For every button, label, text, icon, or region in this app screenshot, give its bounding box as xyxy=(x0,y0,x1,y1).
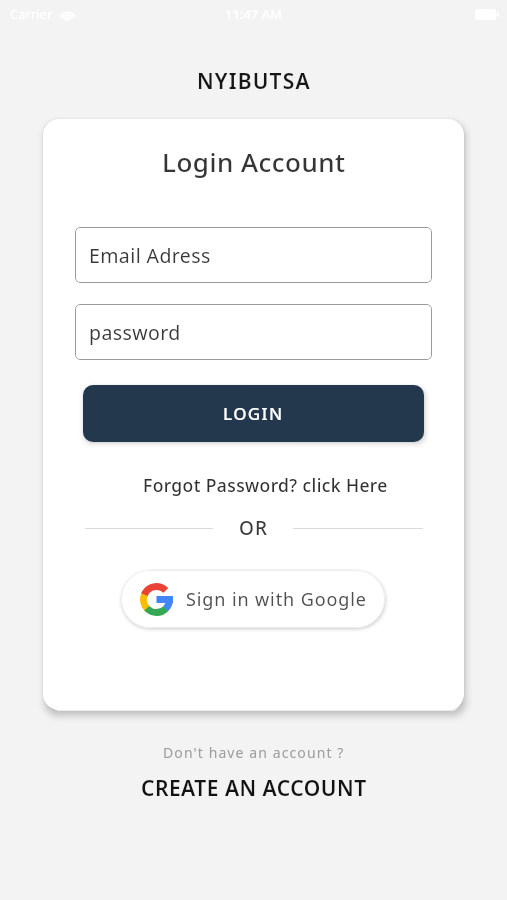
staticText: Email Adress xyxy=(89,242,211,269)
button[interactable]: CREATE AN ACCOUNT xyxy=(0,771,507,805)
staticText: NYIBUTSA xyxy=(197,67,311,96)
staticText: LOGIN xyxy=(223,402,284,425)
staticText: Forgot Password? click Here xyxy=(143,473,388,497)
button[interactable]: LOGIN xyxy=(83,385,424,442)
button[interactable]: Forgot Password? click Here xyxy=(43,470,464,500)
staticText: 11:47 AM xyxy=(225,5,283,23)
button[interactable]: password xyxy=(75,304,432,360)
staticText: OR xyxy=(239,515,269,541)
staticText: Carrier xyxy=(10,5,53,23)
staticText: Login Account xyxy=(162,144,346,178)
button[interactable]: Email Adress xyxy=(75,227,432,283)
staticText: Sign in with Google xyxy=(186,587,367,612)
button[interactable]: Sign in with Google xyxy=(121,570,385,628)
staticText: Don't have an account ? xyxy=(163,743,345,762)
staticText: password xyxy=(89,319,181,346)
staticText: CREATE AN ACCOUNT xyxy=(141,774,367,803)
